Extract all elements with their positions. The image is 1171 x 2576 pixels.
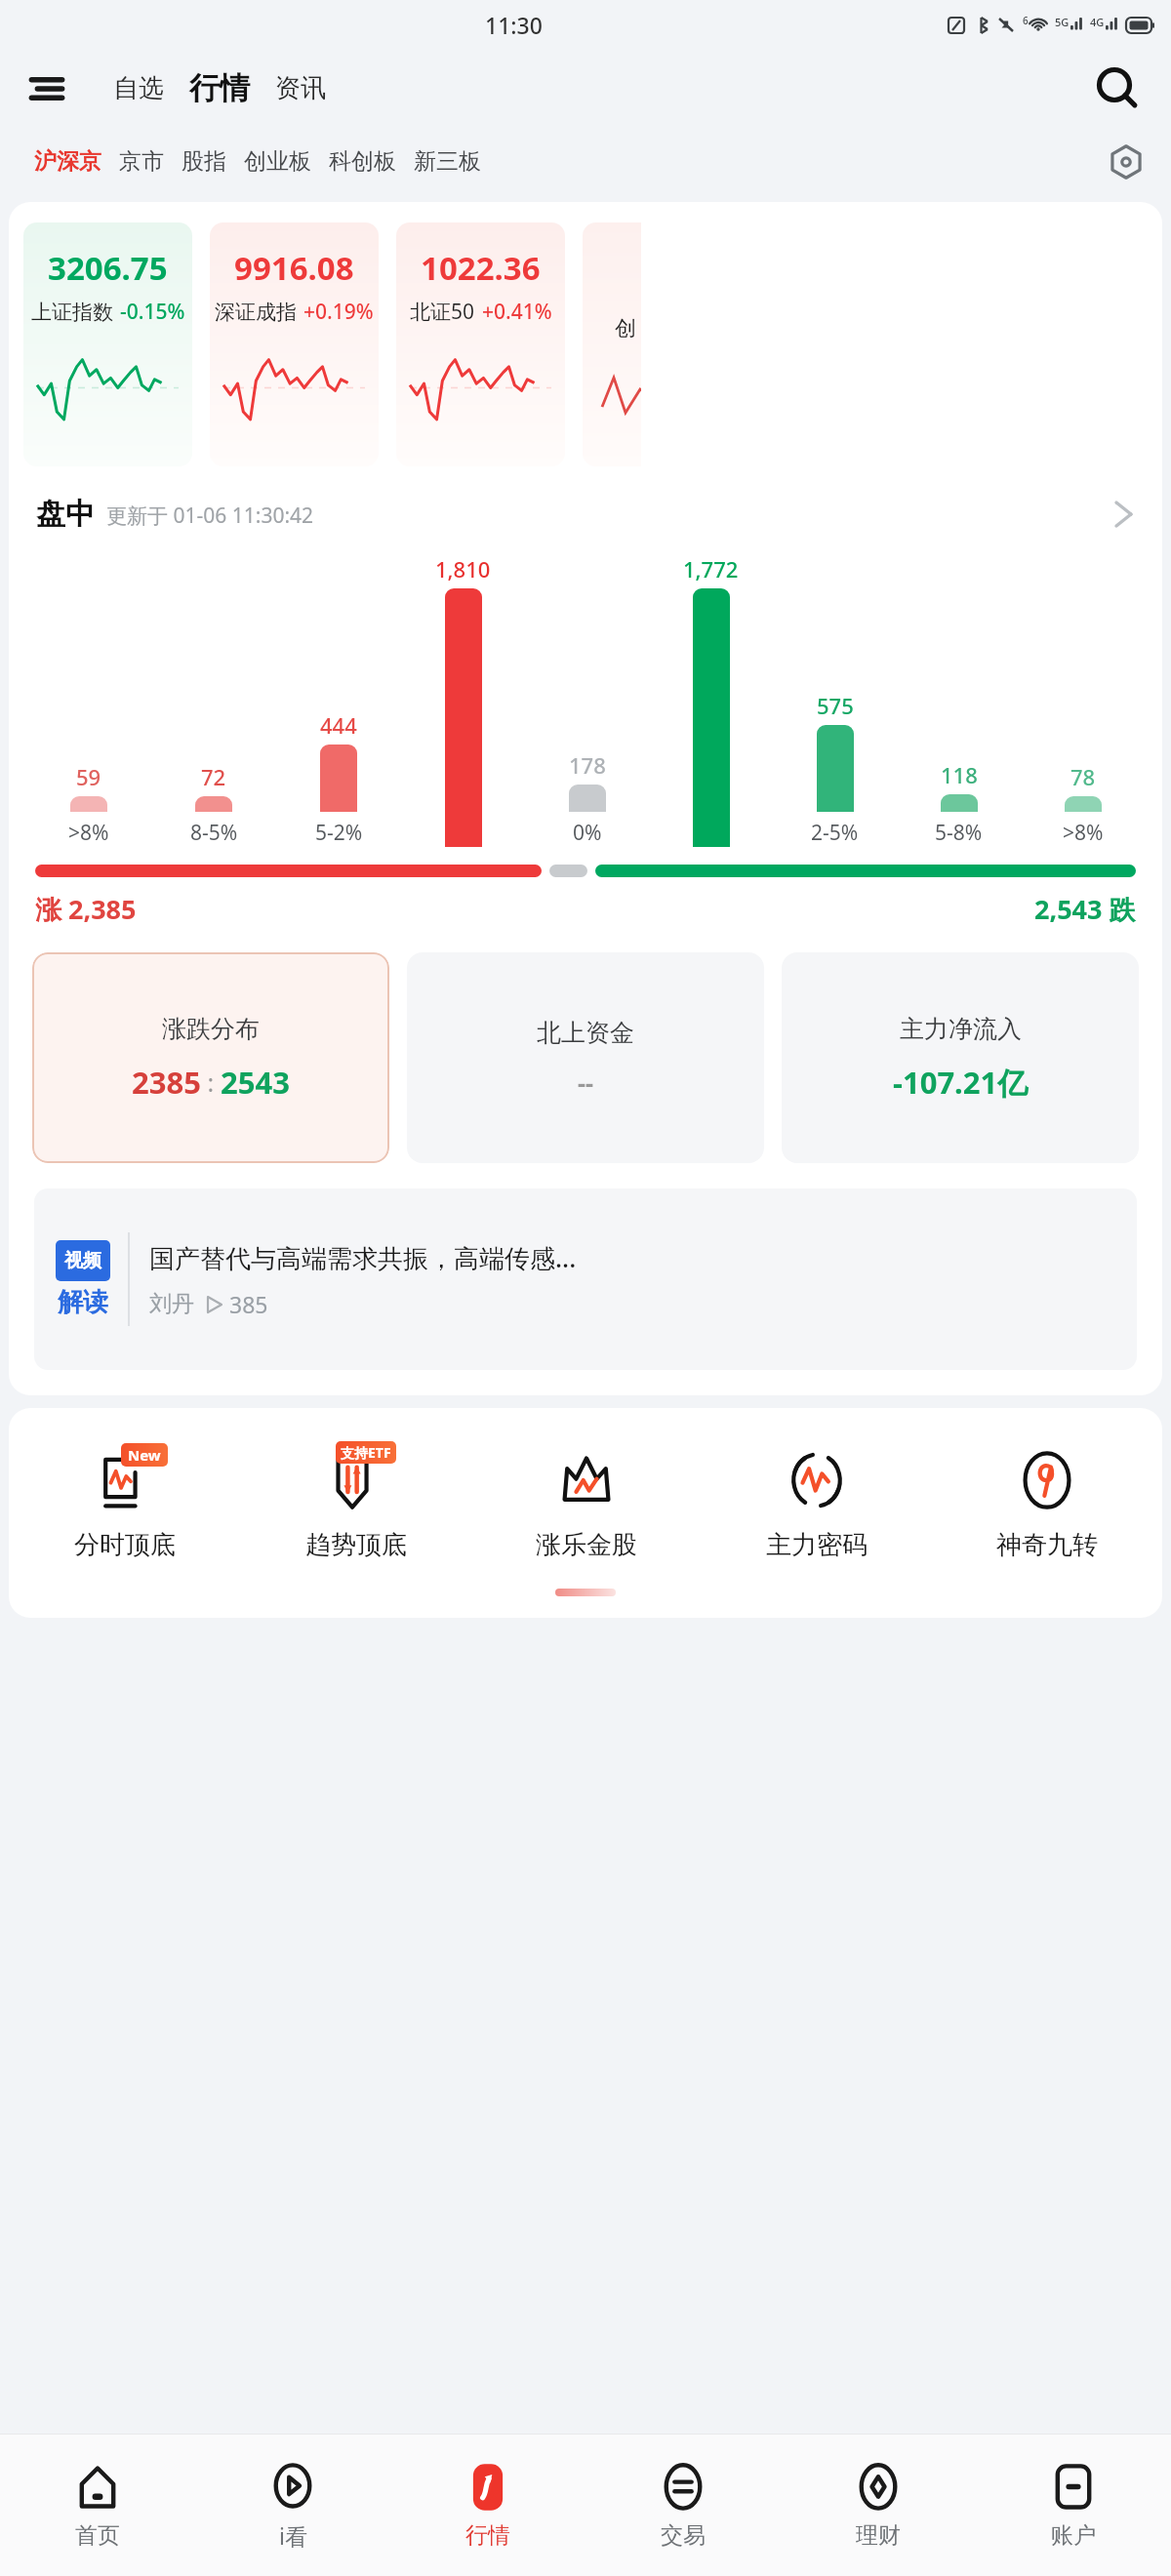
staticText: 支持ETF — [341, 1443, 391, 1462]
staticText: 神奇九转 — [996, 1529, 1098, 1561]
staticText: 78 — [1070, 762, 1096, 791]
staticText: 118 — [941, 760, 978, 789]
staticText: 5G — [1055, 15, 1070, 29]
button[interactable]: 涨乐金股 — [471, 1441, 702, 1561]
staticText: 深证成指 — [215, 300, 297, 325]
button[interactable]: 行情 — [183, 65, 256, 111]
button[interactable]: i看 — [195, 2435, 390, 2576]
staticText: 575 — [817, 691, 854, 720]
staticText: 视频 — [64, 1249, 101, 1272]
staticText: 首页 — [75, 2521, 120, 2550]
button[interactable]: 交易 — [585, 2435, 781, 2576]
button[interactable]: 沪深京 — [25, 140, 110, 183]
staticText: 9916.08 — [234, 246, 354, 290]
staticText: 分时顶底 — [74, 1529, 176, 1561]
staticText: -- — [578, 1066, 594, 1099]
button[interactable]: 新三板 — [405, 140, 490, 183]
staticText: 盘中 — [36, 496, 95, 533]
staticText: 股指 — [182, 147, 226, 176]
staticText: 京市 — [119, 147, 164, 176]
button[interactable]: 自选 — [107, 64, 170, 112]
staticText: 2-5% — [811, 819, 859, 847]
button[interactable]: 3206.75 — [23, 222, 192, 466]
button[interactable]: 支持ETF — [240, 1441, 471, 1561]
staticText: 72 — [201, 762, 226, 791]
staticText: 创业板 — [244, 147, 311, 176]
staticText: 解读 — [58, 1286, 108, 1318]
staticText: 更新于 01-06 11:30:42 — [106, 502, 314, 530]
button[interactable]: 创业板 — [235, 140, 320, 183]
staticText: 趋势顶底 — [305, 1529, 407, 1561]
button[interactable]: 创 — [583, 222, 641, 466]
staticText: 2543 — [221, 1062, 290, 1103]
staticText: 5-2% — [315, 819, 363, 847]
staticText: 国产替代与高端需求共振，高端传感... — [149, 1240, 577, 1275]
staticText: 主力净流入 — [900, 1014, 1022, 1044]
staticText: -0.15% — [120, 298, 185, 326]
staticText: 2385 — [132, 1062, 201, 1103]
staticText: 账户 — [1051, 2521, 1096, 2550]
button[interactable]: 行情 — [390, 2435, 585, 2576]
button[interactable]: Search — [1093, 64, 1142, 113]
staticText: 资讯 — [275, 72, 326, 104]
staticText: 178 — [569, 750, 606, 780]
staticText: 北上资金 — [537, 1018, 634, 1048]
staticText: 385 — [229, 1289, 268, 1319]
staticText: 0% — [573, 819, 602, 847]
staticText: 1022.36 — [421, 246, 541, 290]
staticText: 2,543 跌 — [1034, 891, 1136, 927]
button[interactable]: 视频 — [34, 1188, 1137, 1370]
button[interactable]: 北上资金 — [407, 952, 764, 1163]
button[interactable]: New — [9, 1441, 240, 1561]
staticText: 北证50 — [410, 298, 475, 326]
staticText: 创 — [615, 315, 636, 342]
staticText: : — [201, 1066, 221, 1099]
staticText: >8% — [1063, 819, 1104, 847]
button[interactable]: 京市 — [110, 140, 173, 183]
staticText: 涨 2,385 — [35, 891, 137, 927]
staticText: 自选 — [113, 72, 164, 104]
button[interactable]: 科创板 — [320, 140, 405, 183]
button[interactable]: 首页 — [0, 2435, 195, 2576]
button[interactable]: 理财 — [781, 2435, 976, 2576]
button[interactable]: 主力净流入 — [782, 952, 1139, 1163]
button[interactable]: 神奇九转 — [932, 1441, 1162, 1561]
button[interactable]: 账户 — [976, 2435, 1171, 2576]
button[interactable]: Menu — [24, 66, 69, 111]
button[interactable]: 1022.36 — [396, 222, 565, 466]
button[interactable]: 资讯 — [269, 64, 332, 112]
staticText: i看 — [279, 2520, 307, 2551]
staticText: 59 — [76, 762, 101, 791]
staticText: 行情 — [189, 69, 250, 107]
button[interactable]: 涨跌分布 — [32, 952, 389, 1163]
staticText: -107.21亿 — [893, 1062, 1029, 1103]
staticText: 6 — [1023, 14, 1029, 27]
staticText: 上证指数 — [31, 300, 113, 325]
staticText: 8-5% — [190, 819, 238, 847]
staticText: 4G — [1090, 15, 1105, 29]
staticText: 1,772 — [683, 554, 739, 584]
staticText: 行情 — [465, 2521, 510, 2550]
staticText: 涨跌分布 — [162, 1014, 260, 1044]
button[interactable]: 股指 — [173, 140, 235, 183]
staticText: +0.19% — [303, 298, 374, 326]
staticText: 理财 — [856, 2521, 901, 2550]
staticText: 1,810 — [435, 554, 491, 584]
button[interactable]: Settings — [1099, 135, 1153, 189]
staticText: +0.41% — [482, 298, 552, 326]
staticText: 3206.75 — [48, 246, 168, 290]
staticText: 刘丹 — [149, 1290, 194, 1318]
staticText: 5-8% — [935, 819, 983, 847]
staticText: 交易 — [661, 2521, 706, 2550]
staticText: 沪深京 — [34, 147, 101, 176]
staticText: >8% — [68, 819, 109, 847]
staticText: 主力密码 — [766, 1529, 868, 1561]
staticText: 444 — [320, 710, 357, 740]
button[interactable]: 盘中 — [9, 496, 1162, 533]
staticText: 科创板 — [329, 147, 396, 176]
staticText: 涨乐金股 — [536, 1529, 637, 1561]
staticText: 新三板 — [414, 147, 481, 176]
button[interactable]: 9916.08 — [210, 222, 379, 466]
button[interactable]: 主力密码 — [702, 1441, 932, 1561]
staticText: New — [128, 1445, 161, 1465]
